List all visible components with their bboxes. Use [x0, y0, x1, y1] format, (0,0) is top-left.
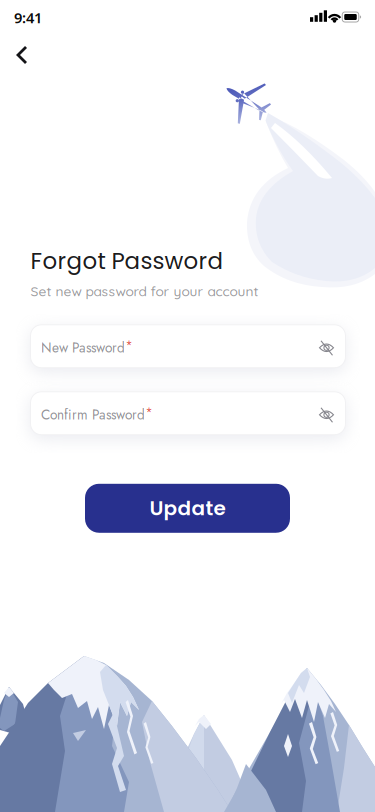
button[interactable]: Show password: [317, 339, 335, 357]
staticText: 9:41: [14, 8, 42, 27]
button[interactable]: Show password: [317, 406, 335, 424]
button[interactable]: New Password: [30, 325, 345, 368]
staticText: Set new password for your account: [30, 283, 258, 300]
button[interactable]: Confirm Password: [30, 392, 345, 435]
staticText: Confirm Password: [41, 405, 145, 425]
staticText: Update: [149, 494, 225, 522]
staticText: New Password: [41, 338, 125, 358]
staticText: *: [145, 404, 152, 421]
staticText: *: [125, 337, 132, 354]
button[interactable]: Back: [15, 45, 28, 64]
button[interactable]: Update: [85, 484, 290, 533]
staticText: Forgot Password: [30, 245, 223, 277]
